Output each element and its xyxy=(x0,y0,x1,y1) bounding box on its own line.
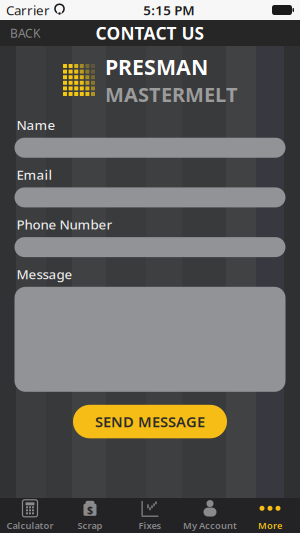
button[interactable] xyxy=(14,138,285,158)
button[interactable]: SEND MESSAGE xyxy=(73,405,227,438)
staticText: Phone Number xyxy=(16,215,112,233)
staticText: Calculator xyxy=(6,519,53,532)
staticText: CONTACT US xyxy=(95,21,204,44)
staticText: MASTERMELT xyxy=(105,81,238,107)
staticText: Carrier xyxy=(6,1,50,19)
button[interactable]: Fixes xyxy=(120,498,180,533)
staticText: Scrap xyxy=(77,519,102,532)
button[interactable] xyxy=(14,187,285,207)
button[interactable]: $ xyxy=(60,498,120,533)
staticText: Email xyxy=(16,166,52,183)
button[interactable]: My Account xyxy=(180,498,240,533)
button[interactable]: BACK xyxy=(0,17,50,49)
staticText: BACK xyxy=(10,25,40,41)
staticText: Message xyxy=(16,265,72,283)
staticText: Fixes xyxy=(138,519,161,532)
button[interactable]: More xyxy=(240,498,300,533)
button[interactable] xyxy=(14,287,285,392)
staticText: PRESMAN xyxy=(105,53,208,81)
staticText: Name xyxy=(16,116,55,134)
staticText: My Account xyxy=(183,519,237,532)
button[interactable]: Calculator xyxy=(0,498,60,533)
staticText: More xyxy=(258,519,282,532)
staticText: $ xyxy=(87,503,93,517)
staticText: 5:15 PM xyxy=(143,1,194,19)
staticText: SEND MESSAGE xyxy=(95,412,205,431)
button[interactable] xyxy=(14,237,285,257)
